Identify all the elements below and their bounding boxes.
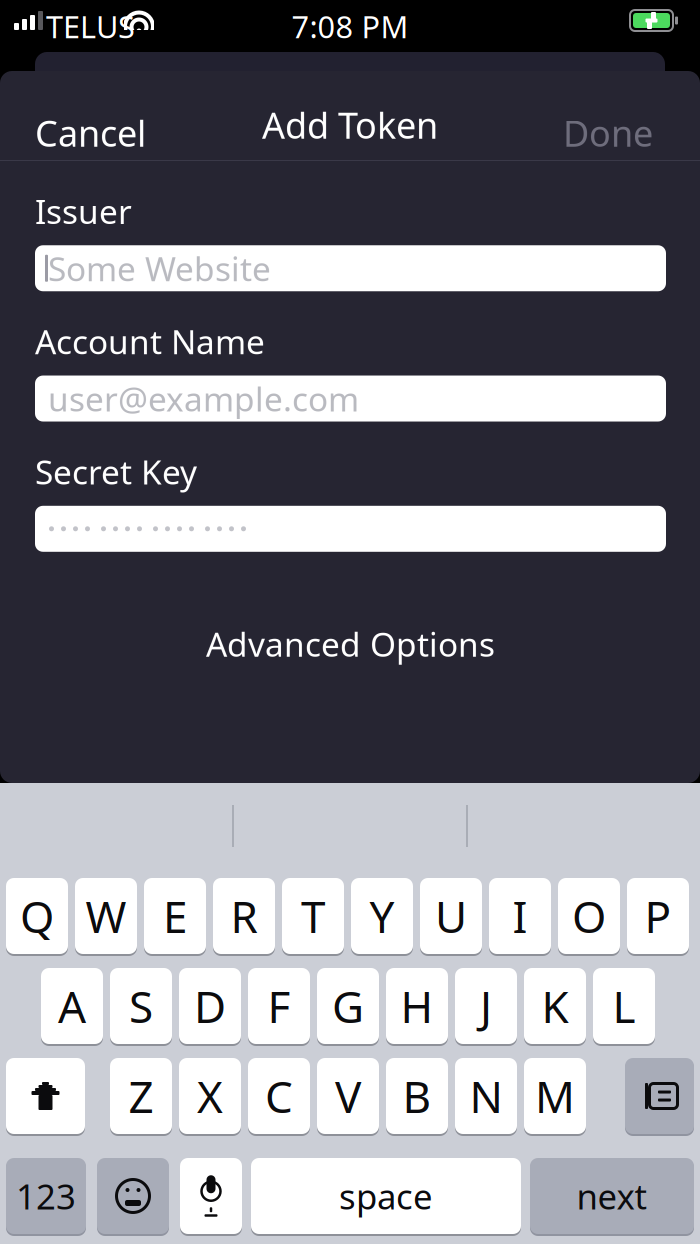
staticText: Add Token (262, 101, 438, 149)
button[interactable]: Y (351, 877, 413, 955)
staticText: N (469, 1067, 502, 1125)
staticText: 123 (16, 1173, 76, 1219)
button[interactable]: X (179, 1057, 241, 1135)
button[interactable]: Cancel (23, 99, 158, 167)
button[interactable]: I (489, 877, 551, 955)
button[interactable]: V (317, 1057, 379, 1135)
button[interactable]: T (282, 877, 344, 955)
button[interactable]: D (179, 967, 241, 1045)
staticText: L (612, 977, 635, 1035)
staticText: Z (128, 1067, 153, 1125)
button[interactable]: S (110, 967, 172, 1045)
staticText: next (576, 1173, 647, 1219)
button[interactable]: C (248, 1057, 310, 1135)
button[interactable]: R (213, 877, 275, 955)
staticText: D (194, 977, 226, 1035)
button[interactable]: Shift (6, 1057, 85, 1135)
staticText: Y (369, 887, 394, 945)
staticText: T (301, 887, 325, 945)
staticText: E (163, 887, 187, 945)
button[interactable]: N (455, 1057, 517, 1135)
button[interactable]: Z (110, 1057, 172, 1135)
button[interactable]: Q (6, 877, 68, 955)
staticText: TELUS (46, 6, 135, 47)
button[interactable]: W (75, 877, 137, 955)
staticText: 7:08 PM (291, 6, 408, 47)
staticText: Done (563, 109, 653, 157)
button[interactable]: 123 (6, 1157, 86, 1235)
staticText: R (230, 887, 257, 945)
button[interactable]: F (248, 967, 310, 1045)
button[interactable]: G (317, 967, 379, 1045)
staticText: Secret Key (35, 449, 197, 494)
button[interactable]: Advanced Options (35, 612, 666, 676)
staticText: Advanced Options (206, 622, 495, 666)
button[interactable]: Done (551, 99, 665, 167)
staticText: I (512, 887, 527, 945)
button[interactable]: O (558, 877, 620, 955)
button[interactable]: Emoji (97, 1157, 169, 1235)
button[interactable]: next (530, 1157, 694, 1235)
staticText: P (644, 887, 671, 945)
staticText: Issuer (35, 189, 132, 233)
staticText: Account Name (35, 319, 265, 364)
button[interactable]: M (524, 1057, 586, 1135)
button[interactable]: P (627, 877, 689, 955)
staticText: S (129, 977, 153, 1035)
staticText: C (265, 1067, 293, 1125)
button[interactable]: B (386, 1057, 448, 1135)
button[interactable]: space (251, 1157, 521, 1235)
button[interactable]: K (524, 967, 586, 1045)
staticText: user@example.com (48, 376, 359, 421)
button[interactable]: Dictation (180, 1157, 242, 1235)
button[interactable]: J (455, 967, 517, 1045)
staticText: F (267, 977, 290, 1035)
button[interactable]: A (41, 967, 103, 1045)
button[interactable]: L (593, 967, 655, 1045)
staticText: Q (20, 887, 54, 945)
staticText: B (402, 1067, 431, 1125)
staticText: W (85, 887, 126, 945)
button[interactable]: U (420, 877, 482, 955)
staticText: Cancel (35, 109, 146, 157)
button[interactable]: E (144, 877, 206, 955)
staticText: K (541, 977, 568, 1035)
staticText: V (335, 1067, 361, 1125)
staticText: M (535, 1067, 575, 1125)
staticText: A (58, 977, 86, 1035)
staticText: X (197, 1067, 223, 1125)
staticText: U (435, 887, 467, 945)
staticText: G (332, 977, 364, 1035)
staticText: Some Website (48, 246, 271, 290)
staticText: O (572, 887, 606, 945)
button[interactable]: Delete (625, 1057, 694, 1135)
staticText: space (339, 1173, 433, 1219)
staticText: H (400, 977, 433, 1035)
button[interactable]: H (386, 967, 448, 1045)
staticText: J (480, 977, 492, 1035)
